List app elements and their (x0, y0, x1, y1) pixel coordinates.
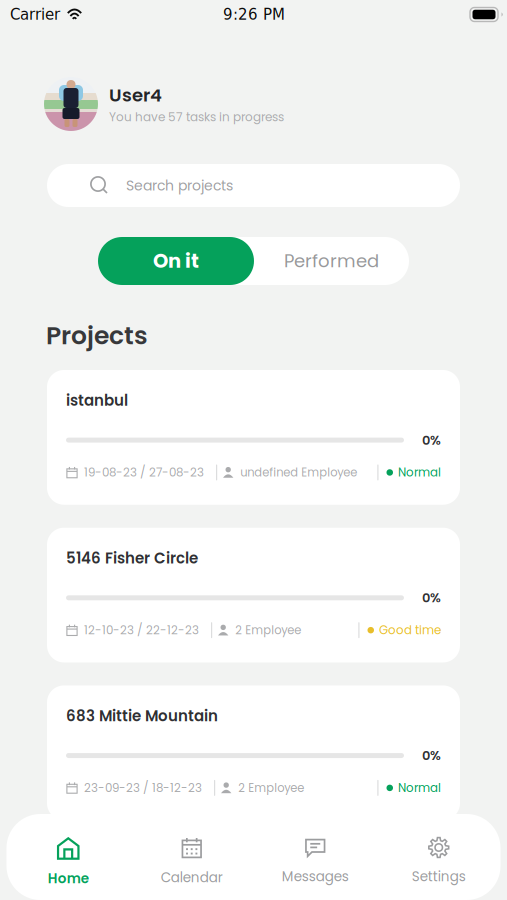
button[interactable]: On it (98, 237, 254, 285)
staticText: 0% (422, 431, 441, 449)
button[interactable]: Calendar (130, 814, 253, 900)
button[interactable]: Home (6, 814, 130, 900)
button[interactable]: Settings (377, 814, 500, 900)
staticText: Carrier (10, 6, 60, 23)
staticText: Normal (398, 464, 441, 481)
staticText: Home (48, 869, 89, 888)
staticText: You have 57 tasks in progress (109, 109, 284, 125)
button[interactable]: istanbul (47, 370, 460, 505)
staticText: Performed (284, 248, 379, 274)
button[interactable]: 5146 Fisher Circle (47, 528, 460, 662)
staticText: 2 Employee (238, 780, 304, 796)
staticText: User4 (109, 82, 162, 108)
staticText: 0% (422, 589, 441, 607)
staticText: 19-08-23 / 27-08-23 (84, 464, 204, 481)
staticText: 12-10-23 / 22-12-23 (84, 622, 199, 638)
staticText: istanbul (66, 390, 128, 411)
staticText: Settings (412, 867, 466, 886)
staticText: 2 Employee (235, 622, 301, 638)
staticText: Messages (282, 867, 349, 886)
staticText: 5146 Fisher Circle (66, 548, 198, 569)
staticText: Normal (398, 780, 441, 796)
button[interactable]: Performed (254, 238, 409, 284)
staticText: 23-09-23 / 18-12-23 (84, 780, 202, 796)
staticText: Search projects (126, 176, 233, 195)
staticText: undefined Employee (240, 464, 357, 480)
staticText: Calendar (161, 868, 223, 887)
staticText: 683 Mittie Mountain (66, 705, 218, 726)
staticText: Good time (379, 622, 441, 638)
staticText: 9:26 PM (223, 6, 285, 23)
staticText: On it (153, 247, 199, 275)
staticText: 0% (422, 746, 441, 765)
button[interactable]: Messages (253, 814, 377, 900)
staticText: Projects (46, 318, 148, 353)
button[interactable]: 683 Mittie Mountain (47, 685, 460, 820)
